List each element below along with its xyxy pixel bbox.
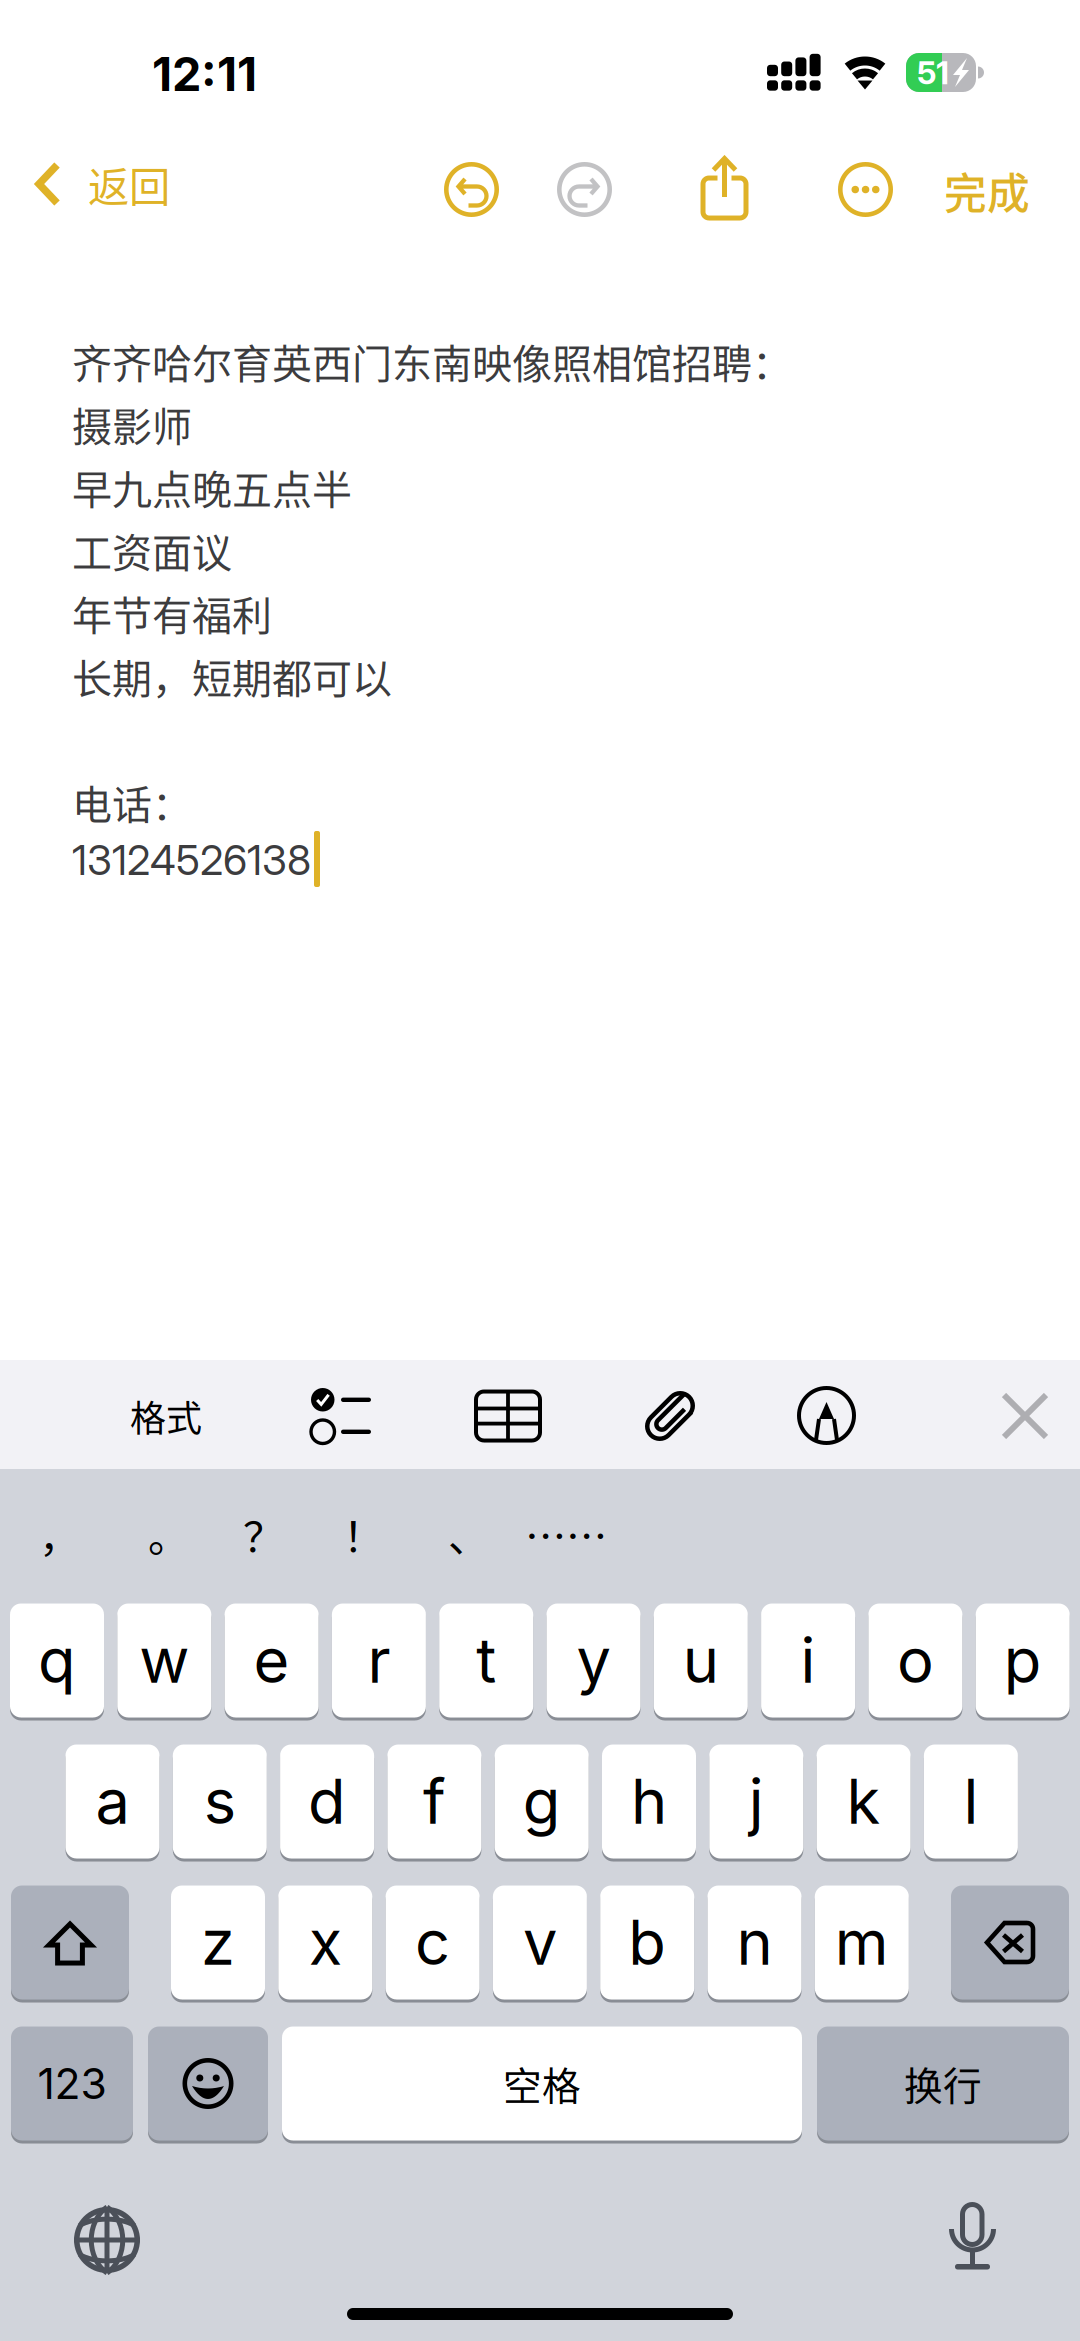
staticText: t — [476, 1623, 496, 1698]
staticText: p — [1004, 1623, 1042, 1698]
staticText: z — [201, 1905, 235, 1980]
button[interactable]: Attach — [637, 1383, 703, 1449]
button[interactable]: 完成 — [917, 148, 1057, 234]
staticText: 空格 — [503, 2055, 581, 2111]
button[interactable]: u — [654, 1602, 748, 1719]
staticText: x — [309, 1905, 342, 1980]
button[interactable]: Share — [700, 155, 748, 220]
button[interactable]: n — [707, 1884, 801, 2001]
button[interactable]: Switch keyboard — [74, 2207, 140, 2273]
button[interactable]: ！ — [343, 1505, 427, 1563]
staticText: 年节有福利 — [72, 584, 272, 642]
button[interactable]: f — [387, 1743, 481, 1860]
staticText: 早九点晚五点半 — [72, 458, 352, 516]
button[interactable]: w — [117, 1602, 211, 1719]
button[interactable]: 。 — [148, 1505, 232, 1563]
button[interactable]: 、 — [448, 1505, 532, 1563]
button[interactable]: 123 — [11, 2025, 133, 2142]
button[interactable]: y — [546, 1602, 640, 1719]
button[interactable]: Delete — [951, 1884, 1069, 2001]
staticText: b — [628, 1905, 666, 1980]
staticText: y — [576, 1623, 610, 1698]
button[interactable]: 格式 — [86, 1360, 246, 1472]
button[interactable]: Checklist — [311, 1388, 371, 1444]
button[interactable]: Table — [476, 1391, 540, 1440]
button[interactable]: v — [493, 1884, 587, 2001]
staticText: r — [367, 1623, 390, 1698]
staticText: s — [204, 1764, 236, 1839]
button[interactable]: Shift — [11, 1884, 129, 2001]
staticText: 换行 — [904, 2055, 982, 2111]
button[interactable]: Undo — [444, 162, 499, 217]
button[interactable]: g — [495, 1743, 589, 1860]
staticText: o — [897, 1623, 934, 1698]
button[interactable]: ， — [39, 1505, 123, 1563]
button[interactable]: 空格 — [282, 2025, 802, 2142]
button[interactable]: Emoji — [148, 2025, 268, 2142]
staticText: l — [963, 1764, 978, 1839]
staticText: 电话： — [72, 773, 192, 831]
staticText: 123 — [37, 2058, 106, 2109]
staticText: 返回 — [88, 154, 170, 214]
staticText: q — [38, 1623, 76, 1698]
staticText: ， — [39, 1504, 80, 1564]
button[interactable]: d — [280, 1743, 374, 1860]
staticText: 51 — [917, 53, 949, 92]
staticText: k — [847, 1764, 881, 1839]
staticText: 工资面议 — [72, 521, 232, 579]
button[interactable]: r — [332, 1602, 426, 1719]
staticText: ！ — [343, 1504, 384, 1564]
button[interactable]: q — [10, 1602, 104, 1719]
staticText: d — [308, 1764, 346, 1839]
staticText: j — [749, 1764, 764, 1839]
button[interactable]: Markup — [799, 1388, 854, 1443]
button[interactable]: Redo — [557, 162, 612, 217]
staticText: m — [835, 1905, 889, 1980]
staticText: i — [801, 1623, 816, 1698]
button[interactable]: Dictate — [949, 2202, 996, 2273]
staticText: e — [254, 1623, 290, 1698]
button[interactable]: c — [386, 1884, 480, 2001]
staticText: w — [139, 1623, 189, 1698]
button[interactable]: p — [976, 1602, 1070, 1719]
button[interactable]: t — [439, 1602, 533, 1719]
button[interactable]: l — [924, 1743, 1018, 1860]
staticText: ？ — [243, 1504, 284, 1564]
staticText: 、 — [448, 1504, 489, 1564]
button[interactable]: h — [602, 1743, 696, 1860]
button[interactable]: b — [600, 1884, 694, 2001]
staticText: 格式 — [130, 1390, 202, 1442]
staticText: c — [415, 1905, 450, 1980]
button[interactable]: 换行 — [817, 2025, 1069, 2142]
staticText: g — [523, 1764, 561, 1839]
button[interactable]: s — [173, 1743, 267, 1860]
staticText: 完成 — [944, 160, 1030, 222]
staticText: 摄影师 — [72, 395, 192, 453]
button[interactable]: o — [868, 1602, 962, 1719]
button[interactable]: a — [65, 1743, 159, 1860]
staticText: …… — [525, 1504, 607, 1564]
staticText: a — [95, 1764, 129, 1839]
staticText: v — [523, 1905, 557, 1980]
staticText: h — [631, 1764, 667, 1839]
staticText: 。 — [148, 1504, 189, 1564]
button[interactable]: 返回 — [10, 144, 250, 224]
button[interactable]: ？ — [243, 1505, 327, 1563]
staticText: 13124526138 — [72, 835, 311, 885]
button[interactable]: z — [171, 1884, 265, 2001]
staticText: n — [736, 1905, 772, 1980]
staticText: 12:11 — [152, 46, 257, 102]
button[interactable]: e — [225, 1602, 319, 1719]
button[interactable]: Close — [999, 1390, 1051, 1442]
staticText: u — [683, 1623, 719, 1698]
button[interactable]: …… — [525, 1505, 609, 1563]
button[interactable]: x — [278, 1884, 372, 2001]
button[interactable]: k — [817, 1743, 911, 1860]
staticText: f — [423, 1764, 446, 1839]
staticText: 长期，短期都可以 — [72, 647, 392, 705]
staticText: 齐齐哈尔育英西门东南映像照相馆招聘： — [72, 332, 792, 390]
button[interactable]: i — [761, 1602, 855, 1719]
button[interactable]: m — [815, 1884, 909, 2001]
button[interactable]: j — [709, 1743, 803, 1860]
button[interactable]: More — [838, 162, 893, 217]
